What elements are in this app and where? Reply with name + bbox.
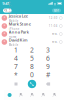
button[interactable]: Call details [58, 17, 64, 19]
staticText: Jessica Lee [9, 13, 28, 19]
staticText: 2 [30, 45, 34, 54]
button[interactable]: Delete [40, 79, 56, 89]
button[interactable]: 7 [8, 62, 24, 70]
staticText: Mark Stone [9, 21, 31, 27]
button[interactable]: Call details [58, 41, 64, 43]
button[interactable]: Mark Stone [0, 22, 64, 30]
button[interactable]: * [8, 70, 24, 79]
button[interactable]: Tab 1 [4, 90, 15, 100]
staticText: * [14, 70, 18, 79]
button[interactable]: 8 [24, 62, 40, 70]
staticText: 0 [30, 70, 34, 79]
button[interactable]: 3 [40, 46, 56, 54]
staticText: 9 [46, 62, 50, 71]
staticText: 3 [46, 45, 50, 54]
button[interactable]: Tab 5 [49, 90, 60, 100]
button[interactable]: Edit [52, 8, 61, 12]
staticText: Yest. [52, 32, 58, 36]
staticText: David Kim [9, 37, 28, 43]
button[interactable]: 2 [24, 46, 40, 54]
button[interactable]: Call [24, 79, 40, 89]
button[interactable]: 1 [8, 46, 24, 54]
button[interactable]: Call details [58, 25, 64, 27]
button[interactable]: Add contact [8, 79, 24, 89]
staticText: # [46, 70, 50, 79]
button[interactable]: Tab 3 [26, 90, 38, 100]
staticText: 6 [46, 54, 50, 63]
button[interactable]: 5 [24, 54, 40, 62]
staticText: 9:41 [2, 1, 9, 6]
staticText: Search [8, 0, 11, 21]
staticText: 11:04 [49, 24, 58, 28]
staticText: Edit [54, 9, 59, 12]
button[interactable]: 9 [40, 62, 56, 70]
staticText: 1 [14, 45, 18, 54]
button[interactable]: 6 [40, 54, 56, 62]
button[interactable]: Jessica Lee [0, 14, 64, 22]
button[interactable]: Call details [58, 33, 64, 35]
staticText: 4 [14, 54, 18, 63]
button[interactable]: Tab 4 [38, 90, 49, 100]
staticText: 7 [14, 62, 18, 71]
button[interactable]: Search [3, 8, 12, 12]
button[interactable]: # [40, 70, 56, 79]
staticText: 12:30 [49, 16, 58, 20]
staticText: Mobile [9, 19, 19, 23]
staticText: 5 [30, 54, 34, 63]
staticText: 8 [30, 62, 34, 71]
button[interactable]: Tab 2 [15, 90, 26, 100]
staticText: iPhone [9, 27, 20, 31]
staticText: Anna Park [9, 29, 29, 35]
button[interactable]: Anna Park [0, 30, 64, 38]
button[interactable]: David Kim [0, 38, 64, 46]
button[interactable]: 4 [8, 54, 24, 62]
staticText: Yest. [52, 40, 58, 44]
button[interactable]: 0 [24, 70, 40, 79]
staticText: Mobile [9, 43, 19, 47]
staticText: Home [9, 35, 17, 39]
